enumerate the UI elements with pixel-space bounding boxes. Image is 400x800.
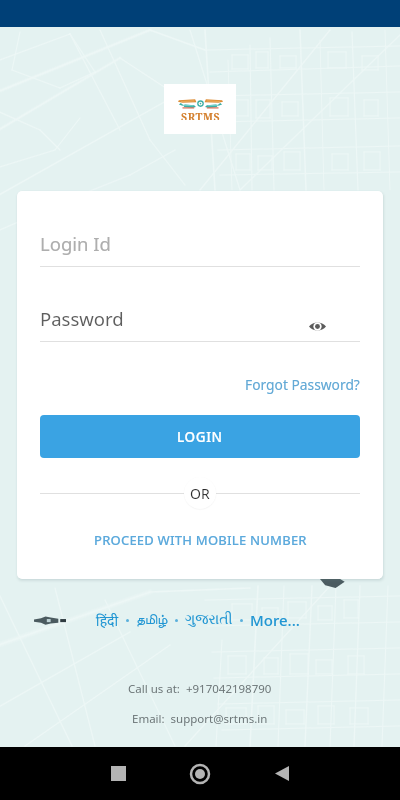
- button[interactable]: LOGIN: [40, 415, 360, 458]
- button[interactable]: Show password: [304, 313, 330, 339]
- button[interactable]: More...: [250, 610, 300, 630]
- button[interactable]: Back: [241, 747, 323, 800]
- staticText: Password: [40, 306, 124, 331]
- staticText: LOGIN: [177, 428, 223, 446]
- staticText: PROCEED WITH MOBILE NUMBER: [94, 531, 307, 549]
- button[interactable]: தமிழ்: [136, 613, 168, 627]
- staticText: Login Id: [40, 231, 111, 256]
- button[interactable]: ગુજરાતી: [185, 613, 233, 627]
- button[interactable]: PROCEED WITH MOBILE NUMBER: [40, 531, 360, 549]
- staticText: SRTMS: [181, 110, 221, 120]
- staticText: Email: support@srtms.in: [132, 711, 268, 727]
- button[interactable]: Forgot Password?: [245, 375, 360, 394]
- staticText: Call us at: +917042198790: [128, 681, 272, 697]
- button[interactable]: Home: [159, 747, 241, 800]
- staticText: OR: [190, 484, 210, 503]
- button[interactable]: हिंदी: [96, 611, 119, 630]
- button[interactable]: Recent apps: [77, 747, 159, 800]
